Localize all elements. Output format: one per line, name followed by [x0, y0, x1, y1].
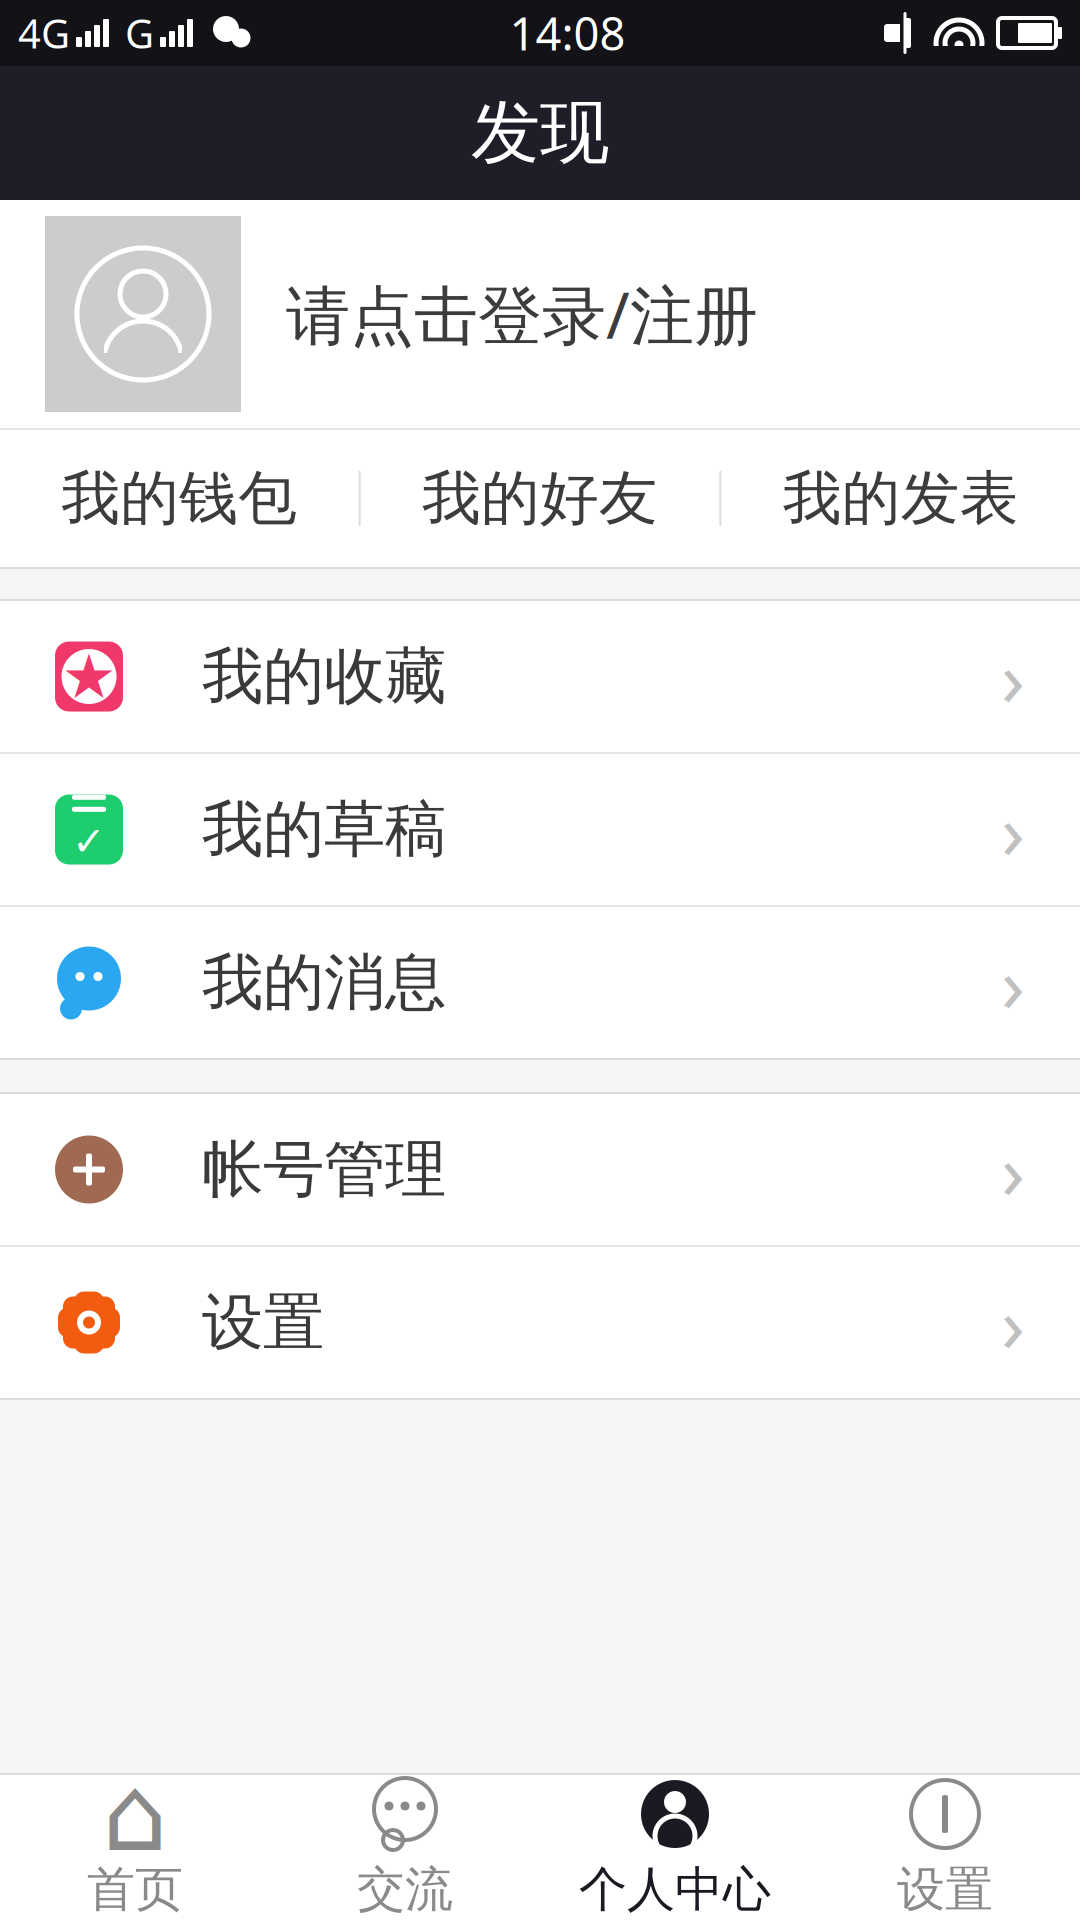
staticText: ›: [1001, 625, 1025, 728]
staticText: 首页: [87, 1860, 183, 1919]
staticText: 我的发表: [783, 462, 1019, 535]
staticText: 我的好友: [422, 462, 658, 535]
staticText: 个人中心: [579, 1860, 771, 1919]
staticText: 我的消息: [202, 945, 446, 1020]
staticText: 设置: [897, 1860, 993, 1919]
staticText: G: [125, 6, 154, 59]
button[interactable]: 我的发表: [721, 430, 1080, 567]
staticText: ›: [1001, 1118, 1025, 1221]
button[interactable]: ⌂: [0, 1775, 270, 1920]
staticText: 帐号管理: [202, 1132, 446, 1207]
staticText: 请点击登录/注册: [286, 271, 758, 356]
staticText: ✓: [72, 819, 106, 864]
button[interactable]: 交流: [270, 1775, 540, 1920]
staticText: 设置: [202, 1285, 324, 1360]
button[interactable]: 个人中心: [540, 1775, 810, 1920]
staticText: 14:08: [509, 3, 625, 63]
button[interactable]: 我的消息: [0, 907, 1080, 1058]
staticText: ⌂: [102, 1755, 168, 1873]
button[interactable]: 请点击登录/注册: [0, 200, 1080, 428]
staticText: ›: [1001, 778, 1025, 881]
staticText: 我的钱包: [61, 462, 297, 535]
staticText: 交流: [357, 1860, 453, 1919]
button[interactable]: 设置: [810, 1775, 1080, 1920]
staticText: 我的草稿: [202, 792, 446, 867]
staticText: ›: [1001, 1271, 1025, 1374]
staticText: 4G: [18, 6, 70, 59]
staticText: 发现: [471, 90, 609, 176]
button[interactable]: ★: [0, 601, 1080, 754]
button[interactable]: 帐号管理: [0, 1094, 1080, 1247]
staticText: ›: [1001, 931, 1025, 1034]
staticText: ★: [61, 642, 116, 711]
button[interactable]: ✓: [0, 754, 1080, 907]
button[interactable]: 设置: [0, 1247, 1080, 1398]
staticText: 我的收藏: [202, 639, 446, 714]
button[interactable]: 我的好友: [361, 430, 719, 567]
button[interactable]: 我的钱包: [0, 430, 359, 567]
